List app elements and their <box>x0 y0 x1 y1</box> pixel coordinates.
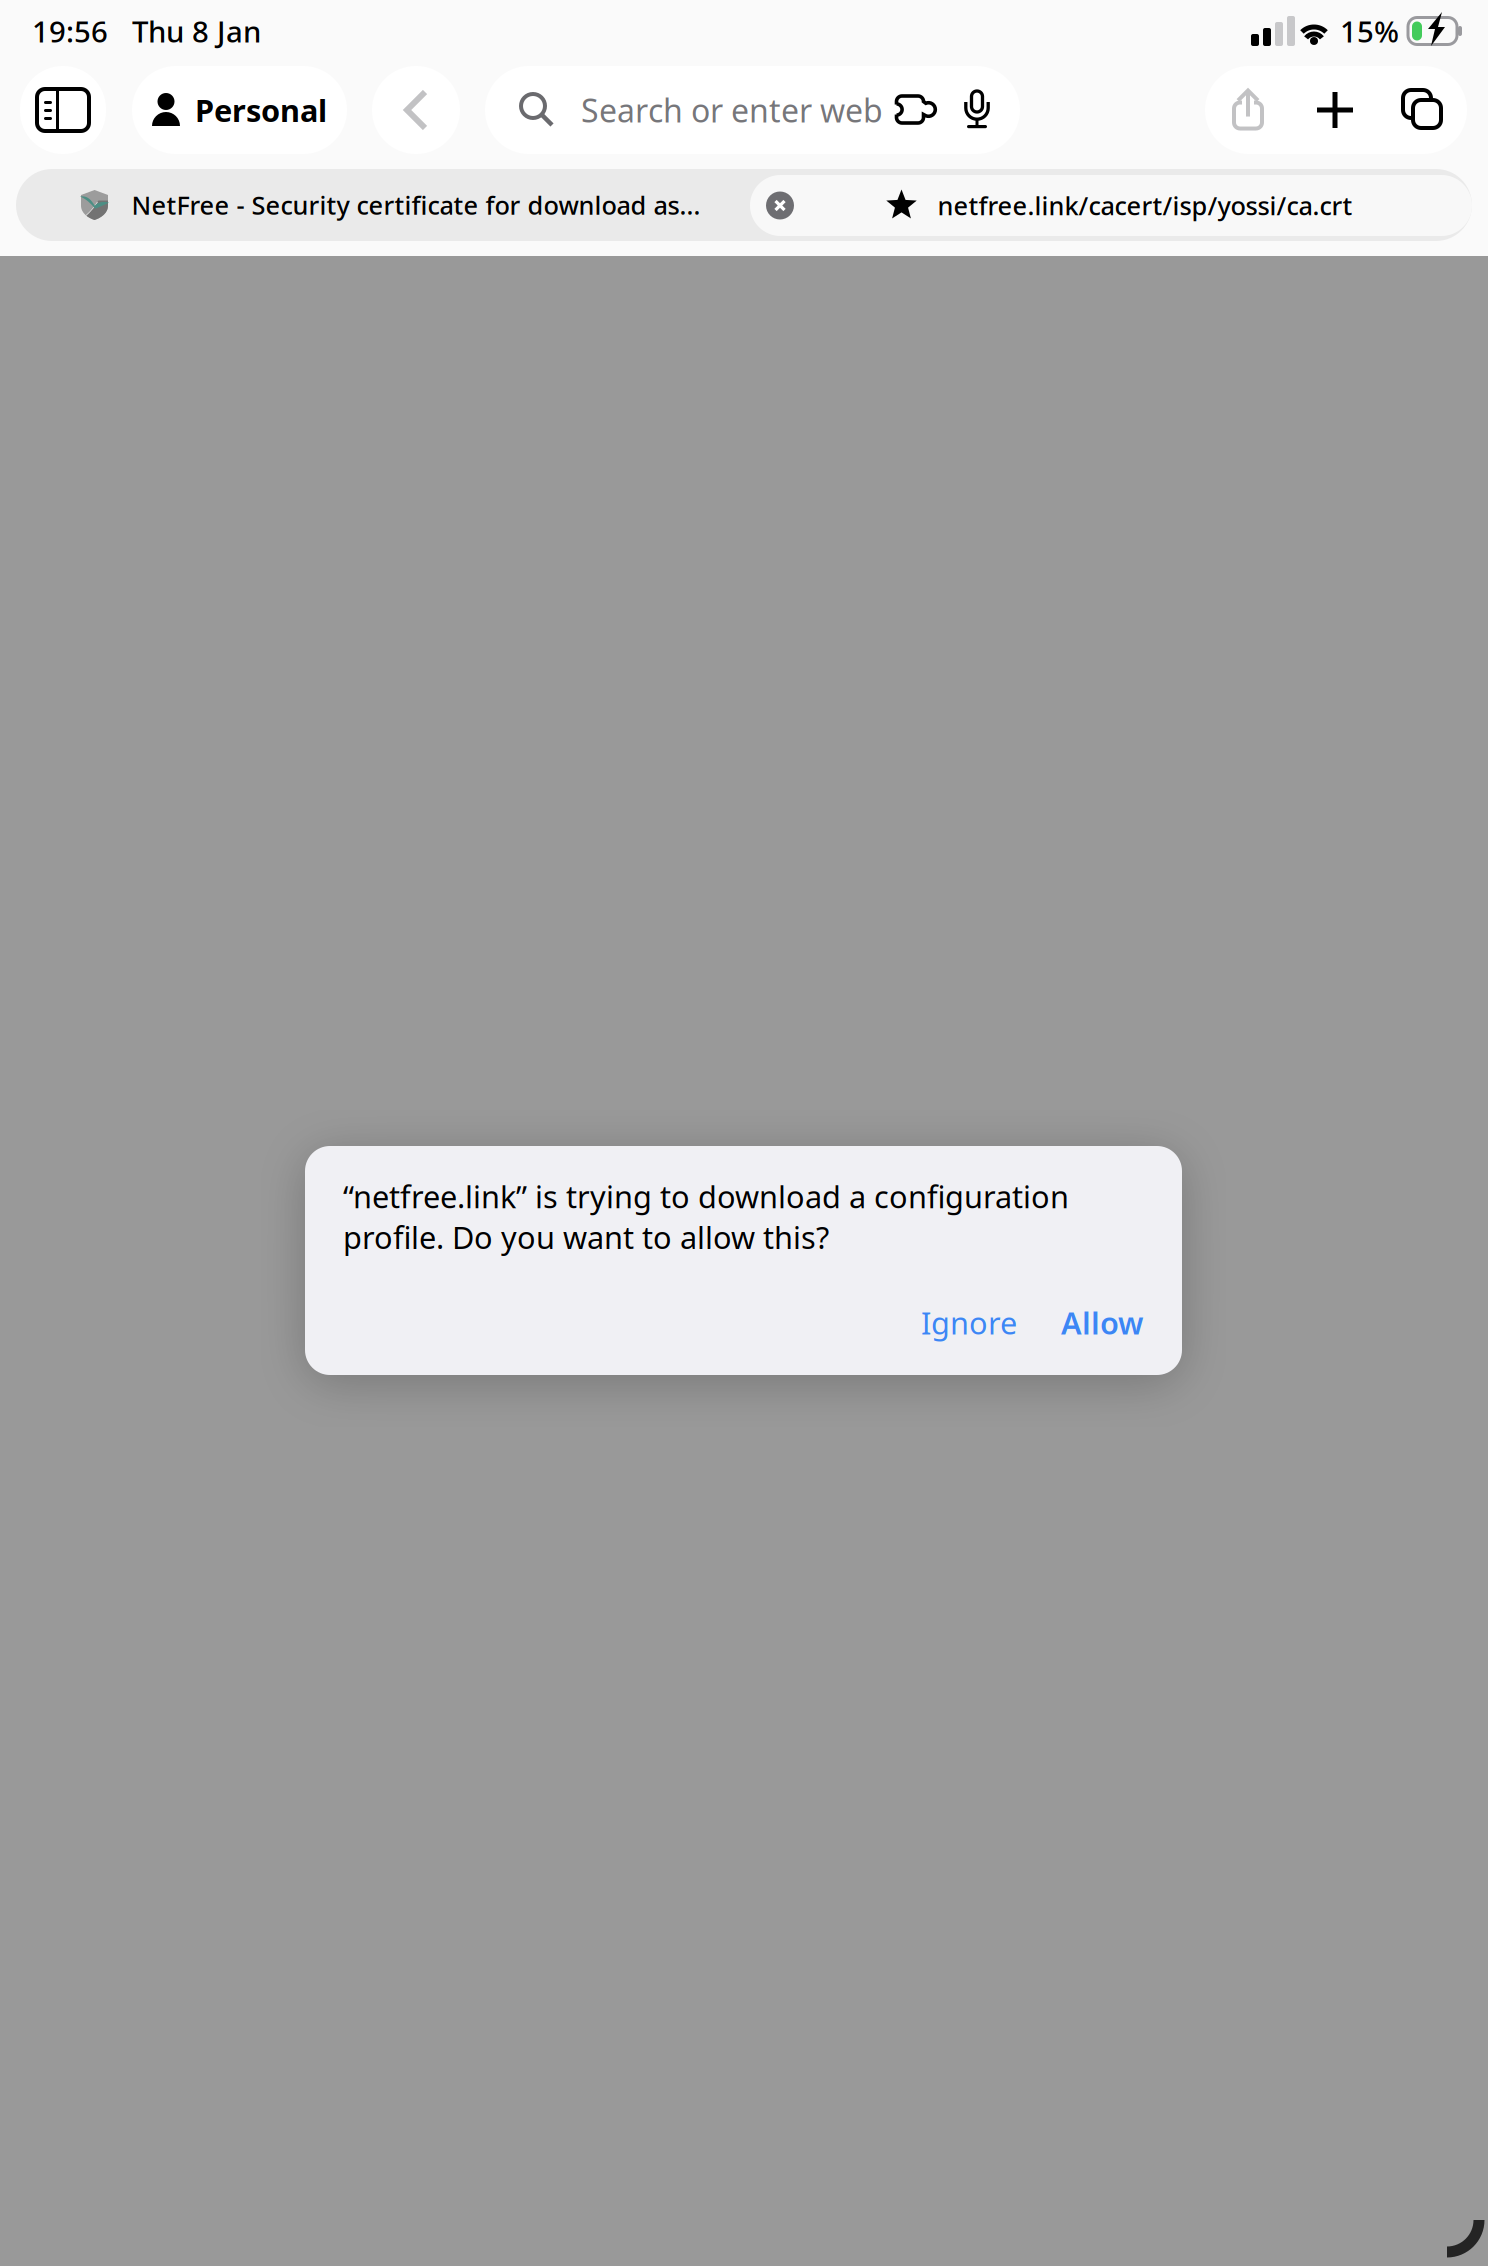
button[interactable]: New tab <box>1291 66 1379 154</box>
staticText: Allow <box>1061 1302 1143 1343</box>
staticText: 15% <box>1340 11 1399 50</box>
button[interactable]: Personal <box>132 66 347 154</box>
button[interactable]: Search or enter web <box>485 66 1020 154</box>
button[interactable]: netfree.link/cacert/isp/yossi/ca.crt <box>750 175 1472 236</box>
staticText: Search or enter web <box>581 89 883 131</box>
button[interactable]: Ignore <box>921 1302 1017 1343</box>
staticText: Personal <box>195 90 327 130</box>
staticText: Thu 8 Jan <box>132 11 261 50</box>
button[interactable]: Back <box>372 66 460 154</box>
button[interactable]: Show sidebar <box>20 66 106 154</box>
staticText: 19:56 <box>32 11 108 50</box>
staticText: Ignore <box>921 1302 1017 1343</box>
staticText: “netfree.link” is trying to download a c… <box>343 1176 1069 1257</box>
button[interactable]: Allow <box>1017 1302 1143 1343</box>
button[interactable]: Share <box>1205 66 1291 154</box>
button[interactable]: NetFree - Security certificate for downl… <box>16 169 1472 241</box>
button[interactable]: Show tabs <box>1379 66 1467 154</box>
staticText: NetFree - Security certificate for downl… <box>131 188 700 222</box>
staticText: netfree.link/cacert/isp/yossi/ca.crt <box>937 189 1352 222</box>
